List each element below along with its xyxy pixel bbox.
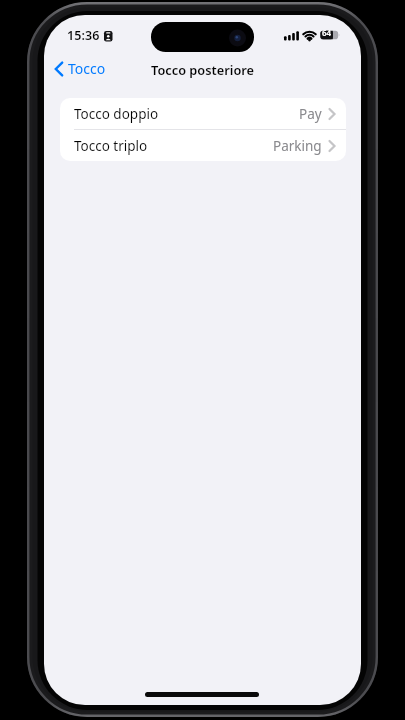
staticText: Tocco doppio	[74, 105, 159, 123]
staticText: Pay	[299, 105, 322, 123]
staticText: Parking	[273, 137, 322, 155]
staticText: 15:36	[67, 27, 100, 44]
staticText: Tocco	[68, 59, 106, 78]
button[interactable]: Tocco doppio	[60, 98, 346, 129]
button[interactable]: Tocco	[54, 59, 106, 78]
staticText: 64	[322, 27, 332, 38]
staticText: Tocco triplo	[74, 137, 148, 155]
button[interactable]: Tocco triplo	[60, 130, 346, 161]
staticText: Tocco posteriore	[151, 61, 255, 78]
